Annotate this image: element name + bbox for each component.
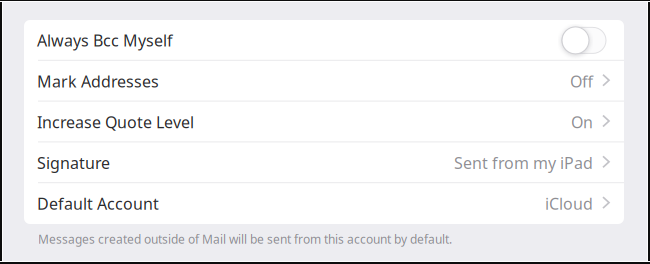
button[interactable]: Mark Addresses [24, 61, 624, 102]
staticText: iCloud [545, 193, 593, 214]
staticText: On [571, 111, 593, 133]
staticText: Signature [37, 152, 110, 173]
staticText: Mark Addresses [37, 71, 159, 92]
button[interactable]: Always Bcc Myself [562, 27, 606, 53]
button[interactable]: Increase Quote Level [24, 102, 624, 142]
staticText: Always Bcc Myself [37, 30, 173, 51]
button[interactable]: Signature [24, 142, 624, 183]
staticText: Off [570, 71, 593, 92]
staticText: Sent from my iPad [454, 152, 593, 173]
staticText: Increase Quote Level [37, 111, 194, 133]
staticText: Messages created outside of Mail will be… [38, 231, 452, 247]
button[interactable]: Default Account [24, 183, 624, 224]
staticText: Default Account [37, 193, 159, 214]
